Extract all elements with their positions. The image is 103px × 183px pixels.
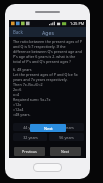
staticText: 32 years (23, 135, 38, 140)
staticText: 1:25 PM (70, 21, 85, 26)
button[interactable]: Next (30, 124, 66, 132)
button[interactable]: 44 years (13, 123, 47, 131)
button[interactable]: 32 years (13, 133, 47, 141)
staticText: 44 years (23, 125, 38, 130)
button[interactable]: Previous (14, 147, 45, 156)
staticText: The ratio between the present ages of P … (13, 39, 84, 64)
staticText: Next (61, 149, 70, 154)
staticText: 6. 48 years (13, 67, 32, 72)
staticText: 56 years (59, 135, 74, 140)
staticText: Previous (22, 149, 37, 154)
button[interactable]: 48 years (49, 123, 84, 131)
staticText: Let the present ages of P and Q be 5x ye… (13, 72, 78, 117)
staticText: Back (13, 29, 23, 35)
staticText: Ages (42, 29, 54, 36)
button[interactable]: Next (50, 147, 81, 156)
button[interactable]: 56 years (49, 133, 84, 141)
button[interactable]: Back (9, 27, 27, 37)
staticText: Next (44, 126, 53, 131)
staticText: 48 years (59, 125, 74, 130)
